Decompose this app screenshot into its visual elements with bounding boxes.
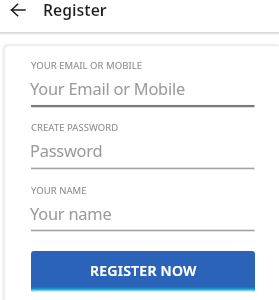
button[interactable]: REGISTER NOW: [31, 251, 255, 292]
staticText: Your Email or Mobile: [30, 77, 185, 99]
button[interactable]: [27, 118, 259, 172]
staticText: Password: [30, 139, 103, 161]
staticText: YOUR NAME: [31, 184, 87, 197]
button[interactable]: [27, 180, 259, 233]
staticText: CREATE PASSWORD: [31, 121, 119, 134]
staticText: YOUR EMAIL OR MOBILE: [31, 59, 143, 72]
staticText: Register: [43, 0, 107, 20]
staticText: REGISTER NOW: [90, 261, 197, 280]
button[interactable]: Navigate up: [6, 0, 30, 20]
staticText: Your name: [30, 202, 112, 224]
button[interactable]: [27, 56, 259, 109]
